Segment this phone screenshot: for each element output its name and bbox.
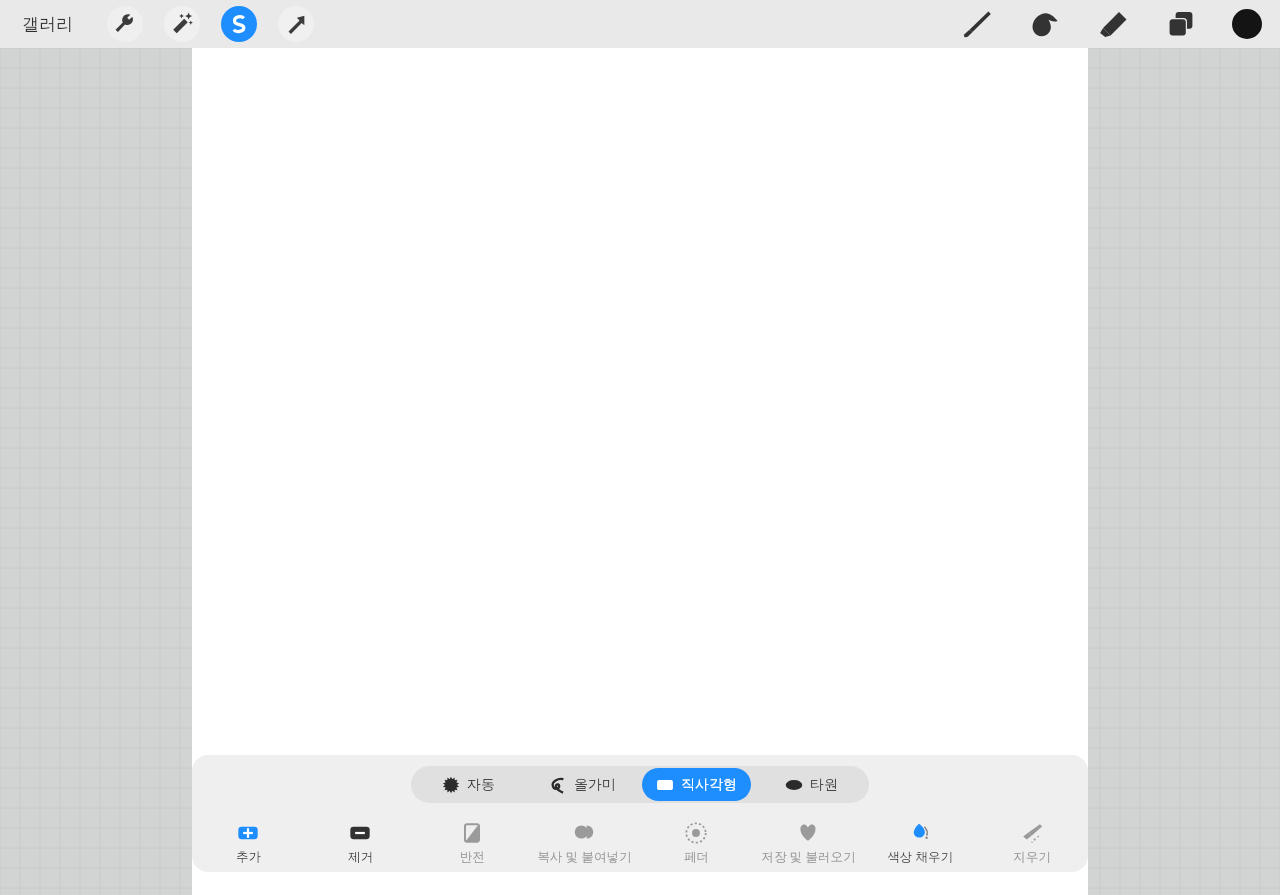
button[interactable]: 반전 [416,817,528,869]
staticText: 타원 [810,776,838,794]
button[interactable]: Layers [1160,3,1202,45]
button[interactable]: Selection [221,6,257,42]
button[interactable]: 자동 [414,768,522,801]
button[interactable]: 갤러리 [18,8,77,41]
staticText: 페더 [684,849,709,865]
button[interactable]: 타원 [757,768,866,801]
button[interactable]: Smudge [1024,3,1066,45]
staticText: 저장 및 불러오기 [761,848,856,865]
button[interactable]: Eraser [1092,3,1134,45]
staticText: 올가미 [574,776,616,794]
button[interactable]: 지우기 [976,817,1088,869]
button[interactable]: 올가미 [528,768,636,801]
button[interactable]: Brush [956,3,998,45]
staticText: 직사각형 [681,776,737,794]
staticText: 제거 [348,849,373,865]
staticText: 지우기 [1013,849,1051,865]
button[interactable]: Transform [278,6,314,42]
button[interactable]: 페더 [640,817,752,869]
staticText: 반전 [460,849,485,865]
staticText: 자동 [467,776,495,794]
button[interactable]: 색상 채우기 [864,817,976,869]
staticText: 색상 채우기 [887,848,953,865]
staticText: 갤러리 [22,14,73,35]
button[interactable]: Adjustments [107,6,143,42]
button[interactable]: 저장 및 불러오기 [752,817,864,869]
staticText: 복사 및 붙여넣기 [537,848,632,865]
button[interactable]: 제거 [304,817,416,869]
button[interactable]: Effects [164,6,200,42]
button[interactable]: 추가 [192,817,304,869]
button[interactable]: 복사 및 붙여넣기 [528,817,640,869]
button[interactable]: 직사각형 [642,768,751,801]
button[interactable]: Color [1228,5,1266,43]
staticText: 추가 [236,849,261,865]
